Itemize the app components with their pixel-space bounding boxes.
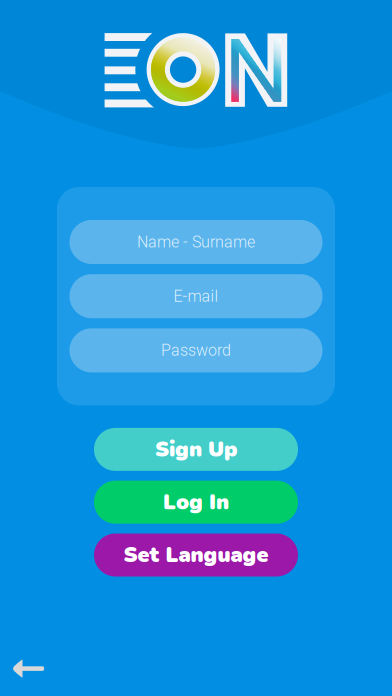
staticText: E-mail bbox=[173, 287, 218, 306]
button[interactable]: Log In bbox=[94, 481, 298, 524]
staticText: Set Language bbox=[123, 540, 268, 570]
button[interactable]: Back bbox=[0, 646, 59, 696]
staticText: Log In bbox=[163, 488, 229, 517]
button[interactable]: Sign Up bbox=[94, 428, 298, 471]
button[interactable]: Password bbox=[69, 328, 322, 372]
staticText: Sign Up bbox=[155, 435, 237, 464]
staticText: Password bbox=[161, 341, 231, 360]
button[interactable]: E-mail bbox=[69, 274, 322, 318]
button[interactable]: Name - Surname bbox=[69, 220, 322, 264]
button[interactable]: Set Language bbox=[94, 533, 298, 576]
staticText: Name - Surname bbox=[137, 233, 255, 251]
